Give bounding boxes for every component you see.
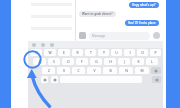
- staticText: R: [76, 50, 79, 55]
- staticText: O: [141, 50, 144, 55]
- staticText: N: [125, 68, 128, 73]
- staticText: P: [154, 50, 157, 55]
- button[interactable]: Enter: [152, 76, 161, 83]
- button[interactable]: Suggestion: [32, 43, 36, 47]
- button[interactable]: M: [135, 67, 149, 74]
- staticText: W: [48, 50, 52, 55]
- staticText: U: [115, 50, 118, 55]
- button[interactable]: Emoji: [41, 76, 48, 83]
- staticText: Z: [48, 68, 50, 73]
- button[interactable]: V: [87, 67, 101, 74]
- staticText: S: [53, 59, 55, 64]
- button[interactable]: R: [72, 49, 83, 56]
- staticText: J: [124, 59, 125, 64]
- staticText: A: [38, 59, 41, 64]
- button[interactable]: P: [150, 49, 161, 56]
- button[interactable]: N: [119, 67, 133, 74]
- button[interactable]: [28, 15, 75, 27]
- button[interactable]: H: [104, 58, 116, 65]
- button[interactable]: Backspace: [151, 67, 161, 74]
- button[interactable]: B: [103, 67, 117, 74]
- staticText: C: [77, 68, 80, 73]
- staticText: K: [137, 59, 140, 64]
- button[interactable]: Yea! I'll find a place: [125, 20, 159, 26]
- staticText: L: [151, 59, 153, 64]
- staticText: Heyy what's up?: [132, 3, 156, 7]
- button[interactable]: F: [76, 58, 88, 65]
- staticText: Yea! I'll find a place: [128, 21, 156, 25]
- staticText: V: [93, 68, 96, 73]
- button[interactable]: Want to grab dinner?: [79, 11, 116, 17]
- staticText: T: [90, 50, 92, 55]
- button[interactable]: I: [124, 49, 135, 56]
- button[interactable]: Y: [98, 49, 109, 56]
- staticText: Q: [35, 50, 38, 55]
- staticText: G: [95, 59, 98, 64]
- button[interactable]: A: [33, 58, 46, 65]
- button[interactable]: Suggestion: [50, 43, 54, 47]
- staticText: F: [81, 59, 83, 64]
- button[interactable]: Camera: [79, 32, 86, 39]
- button[interactable]: Z: [42, 67, 55, 74]
- button[interactable]: Settings: [51, 76, 58, 83]
- button[interactable]: Shift: [30, 67, 40, 74]
- staticText: D: [67, 59, 70, 64]
- button[interactable]: Q: [30, 49, 42, 56]
- staticText: Want to grab dinner?: [82, 12, 113, 16]
- staticText: I: [129, 50, 131, 55]
- button[interactable]: E: [58, 49, 70, 56]
- button[interactable]: Symbols: [30, 76, 38, 83]
- staticText: H: [109, 59, 112, 64]
- button[interactable]: T: [85, 49, 96, 56]
- button[interactable]: K: [132, 58, 144, 65]
- button[interactable]: More options: [153, 32, 160, 39]
- button[interactable]: S: [48, 58, 60, 65]
- button[interactable]: W: [44, 49, 56, 56]
- button[interactable]: X: [57, 67, 70, 74]
- button[interactable]: D: [62, 58, 74, 65]
- button[interactable]: L: [146, 58, 158, 65]
- button[interactable]: O: [137, 49, 148, 56]
- staticText: M: [140, 68, 144, 73]
- button[interactable]: [28, 27, 75, 39]
- button[interactable]: Message: [89, 32, 150, 40]
- button[interactable]: Heyy what's up?: [129, 2, 159, 8]
- button[interactable]: J: [118, 58, 130, 65]
- staticText: E: [63, 50, 65, 55]
- staticText: B: [109, 68, 112, 73]
- button[interactable]: U: [111, 49, 122, 56]
- staticText: Message: [92, 34, 106, 38]
- staticText: X: [63, 68, 65, 73]
- button[interactable]: Suggestion: [41, 43, 45, 47]
- button[interactable]: G: [90, 58, 102, 65]
- button[interactable]: C: [72, 67, 85, 74]
- staticText: Y: [103, 50, 105, 55]
- button[interactable]: [28, 3, 75, 15]
